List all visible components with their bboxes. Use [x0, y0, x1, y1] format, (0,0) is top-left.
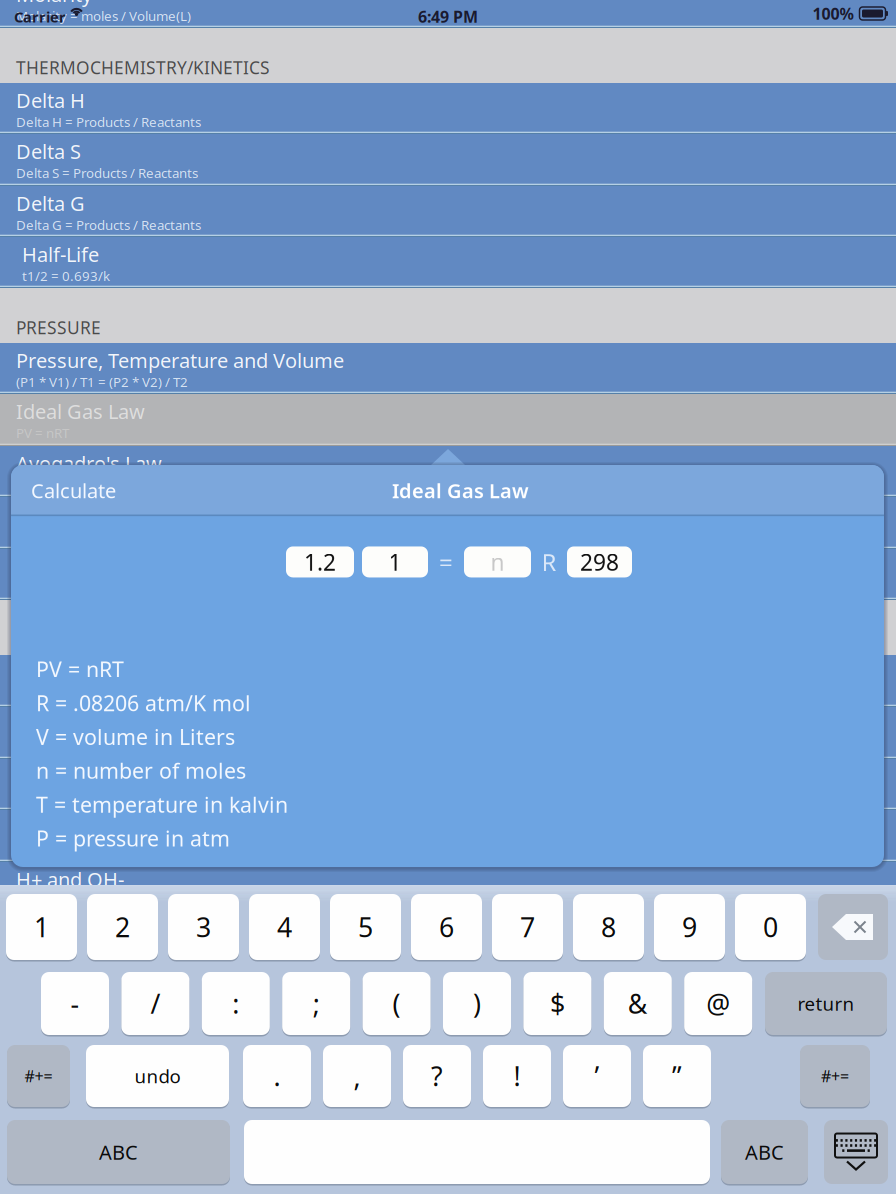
staticText: 1: [34, 909, 49, 945]
button[interactable]: !: [483, 1045, 551, 1109]
staticText: Avogadro's Law: [16, 450, 162, 477]
button[interactable]: @: [684, 972, 752, 1037]
staticText: #+=: [24, 1065, 52, 1087]
button[interactable]: ): [443, 972, 511, 1037]
staticText: 4: [277, 909, 292, 945]
button[interactable]: .: [243, 1045, 311, 1109]
button[interactable]: ’: [563, 1045, 631, 1109]
button[interactable]: 9: [654, 894, 725, 962]
staticText: pH = -log[H+]: [16, 685, 97, 703]
button[interactable]: &: [604, 972, 672, 1037]
staticText: PV = nRT: [16, 424, 69, 442]
button[interactable]: ABC: [721, 1120, 808, 1186]
staticText: n: [490, 547, 504, 577]
button[interactable]: Delete: [818, 894, 888, 960]
button[interactable]: $: [523, 972, 591, 1037]
button[interactable]: #+=: [7, 1045, 70, 1109]
button[interactable]: Delta H: [0, 83, 896, 134]
button[interactable]: 0: [735, 894, 806, 962]
staticText: 3: [196, 909, 211, 945]
staticText: return: [797, 991, 854, 1016]
staticText: Ka and Kb: [16, 763, 108, 790]
staticText: ABC: [745, 1139, 784, 1165]
button[interactable]: -: [41, 972, 109, 1037]
staticText: Ksp = [A]^a * [B]^b: [16, 840, 130, 858]
staticText: ?: [431, 1058, 443, 1094]
staticText: PRESSURE: [16, 316, 101, 339]
button[interactable]: ,: [323, 1045, 391, 1109]
button[interactable]: Ka and Kb: [0, 759, 896, 810]
button[interactable]: #+=: [800, 1045, 870, 1109]
staticText: ): [473, 986, 481, 1021]
staticText: T = temperature in kalvin: [36, 790, 288, 818]
staticText: pH: [16, 659, 43, 686]
button[interactable]: ”: [643, 1045, 711, 1109]
staticText: Calculate: [31, 477, 116, 504]
button[interactable]: Avogadro's Law: [0, 446, 896, 497]
staticText: Ksp: [16, 814, 50, 841]
button[interactable]: Dalton's Law: [0, 497, 896, 549]
staticText: &: [628, 986, 648, 1021]
button[interactable]: /: [121, 972, 189, 1037]
staticText: $: [550, 986, 565, 1021]
staticText: 2: [115, 909, 130, 945]
button[interactable]: Ksp: [0, 810, 896, 862]
button[interactable]: H+ and OH-: [0, 862, 896, 913]
staticText: (: [393, 986, 401, 1021]
button[interactable]: ?: [403, 1045, 471, 1109]
staticText: Delta H = Products / Reactants: [16, 113, 201, 131]
button[interactable]: Graham's Law: [0, 549, 896, 600]
staticText: [H+][OH-] = 1.0E-14: [16, 892, 135, 910]
button[interactable]: return: [765, 972, 887, 1037]
button[interactable]: Delta S: [0, 134, 896, 186]
button[interactable]: pOH: [0, 707, 896, 759]
button[interactable]: Half-Life: [0, 237, 896, 288]
button[interactable]: 4: [249, 894, 320, 962]
button[interactable]: 1: [6, 894, 77, 962]
button[interactable]: [244, 1120, 710, 1186]
button[interactable]: 1.2: [286, 546, 354, 577]
staticText: Delta H: [16, 87, 85, 114]
staticText: Dalton's Law: [16, 501, 134, 528]
staticText: 298: [580, 547, 619, 577]
button[interactable]: n: [464, 546, 531, 577]
staticText: V1 / n1 = V2 / n2: [16, 476, 116, 494]
staticText: ,: [353, 1058, 360, 1094]
button[interactable]: 1: [362, 546, 428, 577]
button[interactable]: 2: [87, 894, 158, 962]
staticText: =: [439, 546, 453, 578]
staticText: THERMOCHEMISTRY/KINETICS: [16, 56, 270, 79]
staticText: Half-Life: [22, 241, 99, 268]
staticText: .: [273, 1058, 280, 1094]
button[interactable]: (: [363, 972, 431, 1037]
button[interactable]: ;: [282, 972, 350, 1037]
button[interactable]: 6: [411, 894, 482, 962]
staticText: 7: [520, 909, 535, 945]
button[interactable]: Pressure, Temperature and Volume: [0, 343, 896, 394]
button[interactable]: 5: [330, 894, 401, 962]
button[interactable]: 298: [567, 546, 632, 577]
staticText: !: [513, 1058, 520, 1094]
button[interactable]: Calculate: [17, 465, 130, 516]
button[interactable]: ABC: [7, 1120, 230, 1186]
button[interactable]: pH: [0, 655, 896, 707]
staticText: (P1 * V1) / T1 = (P2 * V2) / T2: [16, 373, 188, 391]
staticText: Ka * Kb = Kw: [16, 789, 92, 807]
button[interactable]: :: [202, 972, 270, 1037]
staticText: 8: [601, 909, 616, 945]
button[interactable]: Delta G: [0, 186, 896, 237]
button[interactable]: 7: [492, 894, 563, 962]
staticText: 9: [682, 909, 697, 945]
button[interactable]: 8: [573, 894, 644, 962]
button[interactable]: Ideal Gas Law: [0, 394, 896, 446]
staticText: 5: [358, 909, 373, 945]
button[interactable]: undo: [86, 1045, 229, 1109]
staticText: R: [541, 546, 556, 578]
staticText: Ideal Gas Law: [392, 477, 529, 504]
button[interactable]: Molarity: [0, 0, 896, 28]
button[interactable]: 3: [168, 894, 239, 962]
button[interactable]: Hide keyboard: [824, 1120, 888, 1184]
